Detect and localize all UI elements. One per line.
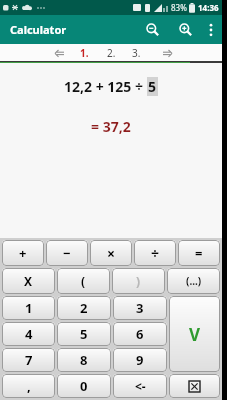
button[interactable]: , — [2, 374, 55, 398]
button[interactable]: 7 — [2, 348, 55, 372]
button[interactable]: ( — [57, 268, 110, 294]
button[interactable]: 8 — [57, 348, 111, 372]
button[interactable] — [51, 45, 67, 61]
staticText: 1 — [25, 299, 33, 317]
staticText: 14:36 — [198, 2, 219, 13]
button[interactable]: ÷ — [134, 240, 176, 266]
staticText: 3. — [132, 46, 141, 60]
staticText: Calculator — [10, 22, 67, 37]
staticText: 2. — [107, 46, 116, 60]
staticText: , — [27, 377, 31, 395]
staticText: 9 — [136, 351, 144, 369]
staticText: ÷ — [151, 244, 160, 263]
staticText: 83% — [171, 2, 187, 13]
button[interactable]: X — [2, 268, 55, 294]
staticText: <- — [135, 378, 146, 394]
button[interactable]: (...) — [167, 268, 220, 294]
staticText: ( — [81, 273, 86, 289]
button[interactable] — [200, 16, 222, 44]
staticText: X — [24, 273, 33, 289]
button[interactable]: = — [178, 240, 220, 266]
button[interactable]: 2 — [57, 296, 111, 320]
button[interactable]: 2. — [107, 46, 116, 60]
button[interactable]: − — [46, 240, 88, 266]
staticText: × — [107, 244, 116, 263]
staticText: 5 — [148, 77, 157, 96]
staticText: 6 — [136, 325, 144, 343]
button[interactable]: 1 — [2, 296, 55, 320]
button[interactable]: 0 — [57, 374, 111, 398]
button[interactable]: V — [169, 296, 220, 372]
staticText: + — [19, 244, 27, 262]
staticText: 0 — [80, 377, 88, 395]
staticText: 2 — [80, 299, 88, 317]
staticText: 3 — [136, 299, 144, 317]
button[interactable]: 1. — [80, 46, 89, 60]
button[interactable] — [139, 16, 167, 44]
staticText: 12,2 + 125 ÷ — [64, 77, 147, 96]
button[interactable]: × — [90, 240, 132, 266]
button[interactable] — [169, 374, 220, 398]
staticText: = — [195, 244, 203, 262]
button[interactable]: 5 — [57, 322, 111, 346]
button[interactable]: 4 — [2, 322, 55, 346]
staticText: ) — [136, 273, 141, 289]
button[interactable] — [172, 16, 200, 44]
staticText: 5 — [80, 325, 88, 343]
button[interactable]: ) — [112, 268, 165, 294]
staticText: − — [63, 244, 71, 262]
staticText: 1. — [80, 46, 89, 60]
staticText: 8 — [80, 351, 88, 369]
button[interactable]: 9 — [113, 348, 167, 372]
staticText: = 37,2 — [91, 117, 131, 136]
button[interactable]: <- — [113, 374, 167, 398]
button[interactable]: 3 — [113, 296, 167, 320]
button[interactable]: + — [2, 240, 44, 266]
staticText: 4 — [25, 325, 33, 343]
button[interactable]: 6 — [113, 322, 167, 346]
button[interactable] — [159, 45, 175, 61]
staticText: V — [189, 323, 201, 346]
staticText: (...) — [186, 274, 202, 288]
staticText: 7 — [25, 351, 33, 369]
button[interactable]: 3. — [132, 46, 141, 60]
